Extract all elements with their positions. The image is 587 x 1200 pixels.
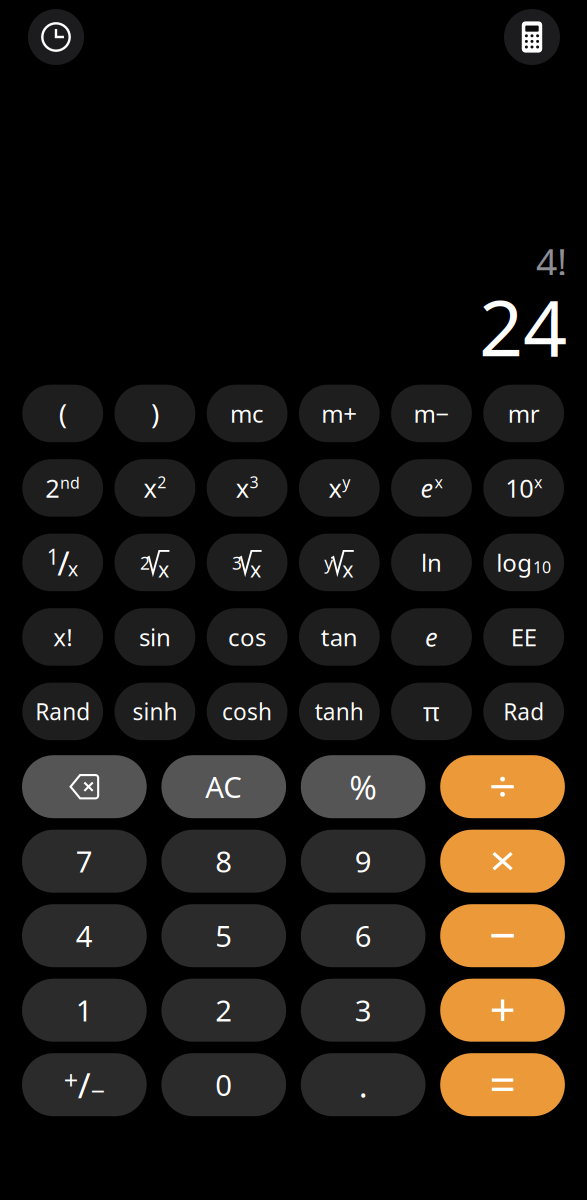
button[interactable]: 2 xyxy=(161,979,286,1042)
button[interactable]: Multiply xyxy=(440,830,565,893)
button[interactable]: ) xyxy=(114,385,195,442)
staticText: y xyxy=(324,551,333,574)
staticText: . xyxy=(359,1063,368,1107)
staticText: 1 xyxy=(76,991,93,1030)
staticText: x xyxy=(328,471,341,505)
staticText: / xyxy=(57,540,69,585)
staticText: / xyxy=(78,1062,91,1108)
staticText: 4! xyxy=(536,237,567,287)
button[interactable]: Subtract xyxy=(440,904,565,967)
button[interactable]: 5 xyxy=(161,904,286,967)
button[interactable]: x2 xyxy=(114,459,195,517)
button[interactable]: mr xyxy=(483,385,564,442)
button[interactable]: % xyxy=(301,755,425,818)
staticText: 24 xyxy=(479,275,567,378)
button[interactable]: Divide xyxy=(440,755,565,818)
button[interactable]: sin xyxy=(114,608,195,666)
staticText: sinh xyxy=(132,696,177,726)
button[interactable]: Delete xyxy=(22,755,147,818)
button[interactable]: EE xyxy=(483,608,564,666)
button[interactable]: log10 xyxy=(483,534,564,591)
button[interactable]: e xyxy=(391,608,472,666)
button[interactable]: y root of x xyxy=(299,534,380,591)
staticText: 6 xyxy=(355,916,372,955)
button[interactable]: mc xyxy=(207,385,287,442)
staticText: 3 xyxy=(249,471,258,492)
staticText: tanh xyxy=(315,696,364,726)
button[interactable]: x! xyxy=(22,608,103,666)
button[interactable]: History xyxy=(28,9,84,65)
staticText: sin xyxy=(139,621,171,653)
button[interactable]: 10x xyxy=(483,459,564,517)
staticText: ) xyxy=(151,395,159,432)
button[interactable]: tan xyxy=(299,608,380,666)
button[interactable]: 0 xyxy=(161,1053,286,1116)
button[interactable]: Calculator modes xyxy=(504,9,560,65)
button[interactable]: 3 root of x xyxy=(207,534,287,591)
staticText: Rand xyxy=(35,696,90,726)
button[interactable]: 8 xyxy=(161,830,286,893)
staticText: x xyxy=(342,555,353,583)
staticText: x! xyxy=(53,621,72,653)
staticText: x xyxy=(143,471,156,505)
button[interactable]: Rand xyxy=(22,683,103,740)
staticText: mc xyxy=(230,397,264,429)
staticText: x xyxy=(68,555,79,582)
staticText: π xyxy=(423,695,440,728)
staticText: x xyxy=(158,555,169,583)
button[interactable]: ( xyxy=(22,385,103,442)
staticText: e xyxy=(421,471,434,505)
staticText: x xyxy=(236,471,249,505)
staticText: 8 xyxy=(215,842,232,881)
staticText: cosh xyxy=(222,696,272,726)
button[interactable]: one over x xyxy=(22,534,103,591)
staticText: ln xyxy=(421,546,442,578)
button[interactable]: 1 xyxy=(22,979,147,1042)
button[interactable]: x3 xyxy=(207,459,287,517)
button[interactable]: 2nd xyxy=(22,459,103,517)
button[interactable]: m+ xyxy=(299,385,380,442)
button[interactable]: . xyxy=(301,1053,425,1116)
button[interactable]: Plus or minus xyxy=(22,1053,147,1116)
staticText: Rad xyxy=(503,696,544,726)
button[interactable]: ln xyxy=(391,534,472,591)
button[interactable]: 6 xyxy=(301,904,425,967)
button[interactable]: sinh xyxy=(114,683,195,740)
staticText: 9 xyxy=(355,842,372,881)
staticText: y xyxy=(342,471,350,492)
button[interactable]: Add xyxy=(440,979,565,1042)
button[interactable]: cosh xyxy=(207,683,287,740)
staticText: mr xyxy=(508,397,540,429)
staticText: x xyxy=(534,471,542,492)
staticText: − xyxy=(91,1074,105,1107)
button[interactable]: cos xyxy=(207,608,287,666)
button[interactable]: 7 xyxy=(22,830,147,893)
staticText: m+ xyxy=(321,397,357,429)
button[interactable]: π xyxy=(391,683,472,740)
staticText: EE xyxy=(511,621,537,653)
staticText: 0 xyxy=(215,1065,232,1104)
staticText: 2 xyxy=(157,471,166,492)
staticText: cos xyxy=(228,621,266,653)
button[interactable]: tanh xyxy=(299,683,380,740)
staticText: 2 xyxy=(215,991,232,1030)
staticText: x xyxy=(434,471,442,492)
button[interactable]: m− xyxy=(391,385,472,442)
button[interactable]: Rad xyxy=(483,683,564,740)
button[interactable]: ex xyxy=(391,459,472,517)
staticText: 1 xyxy=(47,542,59,571)
button[interactable]: 4 xyxy=(22,904,147,967)
button[interactable]: 9 xyxy=(301,830,425,893)
button[interactable]: Equals xyxy=(440,1053,565,1116)
staticText: + xyxy=(64,1063,78,1096)
staticText: tan xyxy=(321,621,358,653)
button[interactable]: xy xyxy=(299,459,380,517)
button[interactable]: AC xyxy=(161,755,286,818)
button[interactable]: 2 root of x xyxy=(114,534,195,591)
staticText: 2 xyxy=(45,471,59,505)
button[interactable]: 3 xyxy=(301,979,425,1042)
staticText: nd xyxy=(60,472,80,493)
staticText: 7 xyxy=(76,842,93,881)
staticText: x xyxy=(250,555,261,583)
staticText: AC xyxy=(205,767,242,806)
